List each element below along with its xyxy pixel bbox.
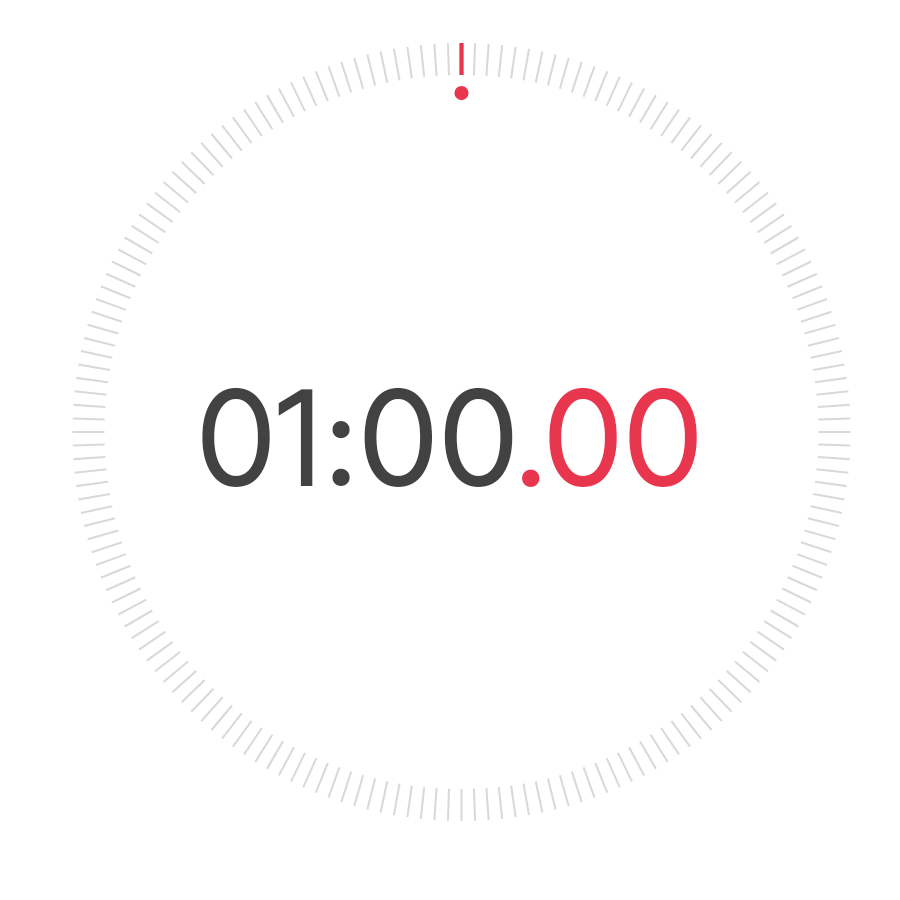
staticText: 01:00.00: [196, 331, 704, 567]
button[interactable]: 01:00.00: [196, 331, 704, 567]
button[interactable]: Timer dial, set duration: [0, 0, 900, 900]
